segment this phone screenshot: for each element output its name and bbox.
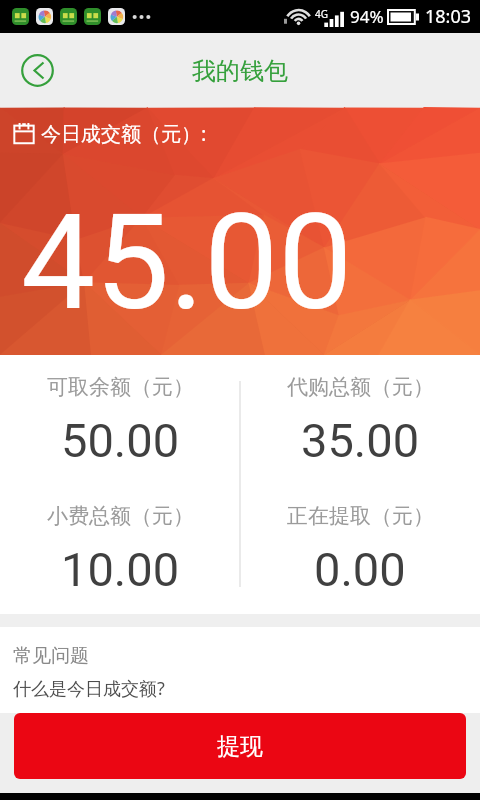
staticText: 35.00: [301, 413, 420, 468]
button[interactable]: 什么是今日成交额?: [13, 676, 165, 701]
button[interactable]: 小费总额（元）: [0, 484, 240, 597]
button[interactable]: 正在提取（元）: [240, 484, 480, 597]
staticText: 10.00: [61, 542, 180, 597]
staticText: 可取余额（元）: [47, 374, 194, 400]
staticText: 小费总额（元）: [47, 503, 194, 529]
button[interactable]: 提现: [14, 713, 466, 779]
staticText: 50.00: [61, 413, 180, 468]
staticText: 0.00: [314, 542, 406, 597]
staticText: 94%: [350, 5, 384, 28]
button[interactable]: Back: [21, 54, 54, 87]
button[interactable]: 代购总额（元）: [240, 355, 480, 468]
staticText: 45.00: [21, 186, 353, 341]
staticText: 18:03: [425, 4, 472, 29]
staticText: 常见问题: [13, 644, 89, 668]
staticText: 今日成交额（元）:: [41, 120, 207, 147]
staticText: 4G: [315, 7, 328, 21]
button[interactable]: 可取余额（元）: [0, 355, 240, 468]
staticText: 提现: [217, 732, 263, 761]
staticText: 我的钱包: [192, 56, 288, 86]
staticText: 正在提取（元）: [287, 503, 434, 529]
staticText: 代购总额（元）: [287, 374, 434, 400]
